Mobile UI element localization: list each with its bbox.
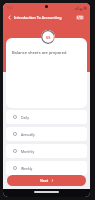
staticText: Introduction To Accounting xyxy=(14,15,62,20)
button[interactable]: Next xyxy=(7,175,86,186)
button[interactable]: Question 1 of 10 xyxy=(76,15,84,20)
staticText: Next xyxy=(40,178,49,183)
button[interactable]: Annually xyxy=(6,127,87,141)
staticText: 55 xyxy=(46,35,51,40)
staticText: Weekly xyxy=(21,166,33,171)
button[interactable]: Monthly xyxy=(6,144,87,158)
staticText: Annually xyxy=(21,132,35,137)
button[interactable]: Weekly xyxy=(6,161,87,175)
staticText: 9:41 xyxy=(7,6,14,10)
staticText: Daily xyxy=(21,115,29,120)
staticText: Monthly xyxy=(21,149,35,154)
staticText: Balance sheets are prepared xyxy=(12,50,67,55)
button[interactable]: Back xyxy=(6,14,13,21)
button[interactable]: Daily xyxy=(6,110,87,124)
staticText: 1/10 xyxy=(77,16,83,20)
